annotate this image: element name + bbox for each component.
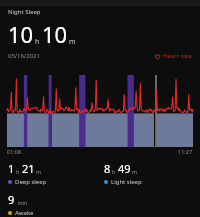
button[interactable]: Heart rate <box>152 51 194 61</box>
staticText: Night Sleep <box>8 8 41 16</box>
staticText: 49 <box>118 161 131 176</box>
staticText: 05/16/2021 <box>8 52 40 60</box>
staticText: Awake <box>15 209 34 217</box>
staticText: 21 <box>22 161 35 176</box>
staticText: 8 <box>104 161 111 176</box>
staticText: 1 <box>8 161 15 176</box>
button[interactable]: 1 <box>8 161 100 186</box>
staticText: 10 <box>42 19 68 49</box>
staticText: m <box>36 168 42 175</box>
staticText: Heart rate <box>163 52 192 60</box>
staticText: h <box>112 168 116 175</box>
staticText: Deep sleep <box>15 178 47 186</box>
staticText: 9 <box>8 192 15 207</box>
staticText: h <box>16 168 20 175</box>
staticText: h <box>35 37 40 47</box>
staticText: 10 <box>8 19 34 49</box>
staticText: 11:27 <box>178 148 193 155</box>
staticText: 01:08 <box>7 148 22 155</box>
staticText: m <box>132 168 138 175</box>
staticText: Light sleep <box>111 178 142 186</box>
staticText: min <box>16 199 28 206</box>
button[interactable]: 9 <box>8 192 100 217</box>
staticText: m <box>69 37 76 47</box>
button[interactable]: 8 <box>104 161 200 186</box>
